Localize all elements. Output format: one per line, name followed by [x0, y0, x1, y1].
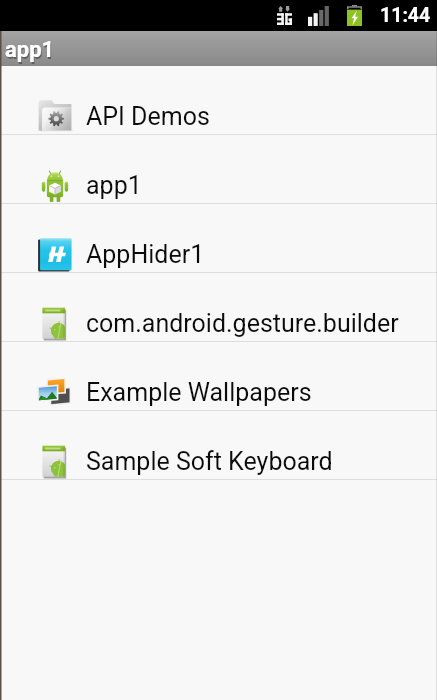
button[interactable]: API Demos: [0, 66, 437, 135]
staticText: API Demos: [86, 102, 210, 131]
staticText: app1: [6, 39, 56, 65]
staticText: com.android.gesture.builder: [86, 309, 399, 338]
staticText: AppHider1: [86, 240, 205, 269]
staticText: Sample Soft Keyboard: [86, 447, 333, 476]
other: Signal strength: [308, 6, 329, 26]
staticText: app1: [5, 37, 55, 63]
button[interactable]: Example Wallpapers: [0, 342, 437, 411]
staticText: 11:44: [380, 4, 431, 27]
staticText: app1: [86, 171, 142, 200]
staticText: Example Wallpapers: [86, 378, 312, 407]
button[interactable]: AppHider1: [0, 204, 437, 273]
other: Battery charging: [347, 5, 362, 26]
button[interactable]: Sample Soft Keyboard: [0, 411, 437, 480]
button[interactable]: app1: [0, 135, 437, 204]
other: Mobile data 3G: [277, 6, 292, 25]
button[interactable]: com.android.gesture.builder: [0, 273, 437, 342]
